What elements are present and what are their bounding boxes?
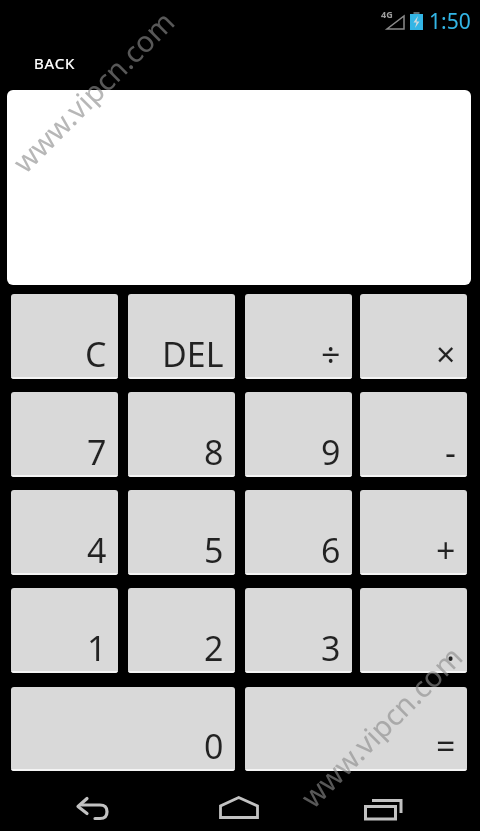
staticText: 7: [87, 429, 107, 475]
button[interactable]: 5: [128, 490, 235, 575]
staticText: 3: [321, 625, 341, 671]
staticText: -: [445, 429, 456, 475]
staticText: 6: [321, 527, 341, 573]
button[interactable]: [64, 784, 120, 831]
staticText: .: [446, 625, 456, 671]
button[interactable]: 6: [245, 490, 352, 575]
staticText: C: [85, 331, 107, 377]
button[interactable]: -: [360, 392, 467, 477]
staticText: 4: [87, 527, 107, 573]
button[interactable]: ×: [360, 294, 467, 379]
staticText: www.vipcn.com: [292, 637, 468, 813]
button[interactable]: 4: [11, 490, 118, 575]
staticText: ×: [436, 331, 456, 377]
button[interactable]: [212, 784, 268, 831]
button[interactable]: 8: [128, 392, 235, 477]
button[interactable]: 2: [128, 588, 235, 673]
button[interactable]: DEL: [128, 294, 235, 379]
staticText: 1: [87, 625, 107, 671]
staticText: DEL: [162, 331, 224, 377]
button[interactable]: 9: [245, 392, 352, 477]
button[interactable]: =: [245, 687, 467, 771]
staticText: ÷: [321, 331, 341, 377]
staticText: 0: [204, 723, 224, 769]
staticText: 2: [204, 625, 224, 671]
button[interactable]: 3: [245, 588, 352, 673]
staticText: =: [436, 723, 456, 769]
button[interactable]: C: [11, 294, 118, 379]
button[interactable]: .: [360, 588, 467, 673]
staticText: www.vipcn.com: [4, 2, 180, 178]
staticText: 9: [321, 429, 341, 475]
button[interactable]: 7: [11, 392, 118, 477]
staticText: 8: [204, 429, 224, 475]
staticText: BACK: [34, 53, 76, 73]
button[interactable]: ÷: [245, 294, 352, 379]
staticText: +: [436, 527, 456, 573]
button[interactable]: [356, 784, 412, 831]
button[interactable]: +: [360, 490, 467, 575]
staticText: 4G: [381, 8, 393, 20]
button[interactable]: 1: [11, 588, 118, 673]
staticText: 5: [204, 527, 224, 573]
button[interactable]: 0: [11, 687, 235, 771]
button[interactable]: BACK: [26, 50, 84, 75]
staticText: 1:50: [429, 7, 471, 36]
